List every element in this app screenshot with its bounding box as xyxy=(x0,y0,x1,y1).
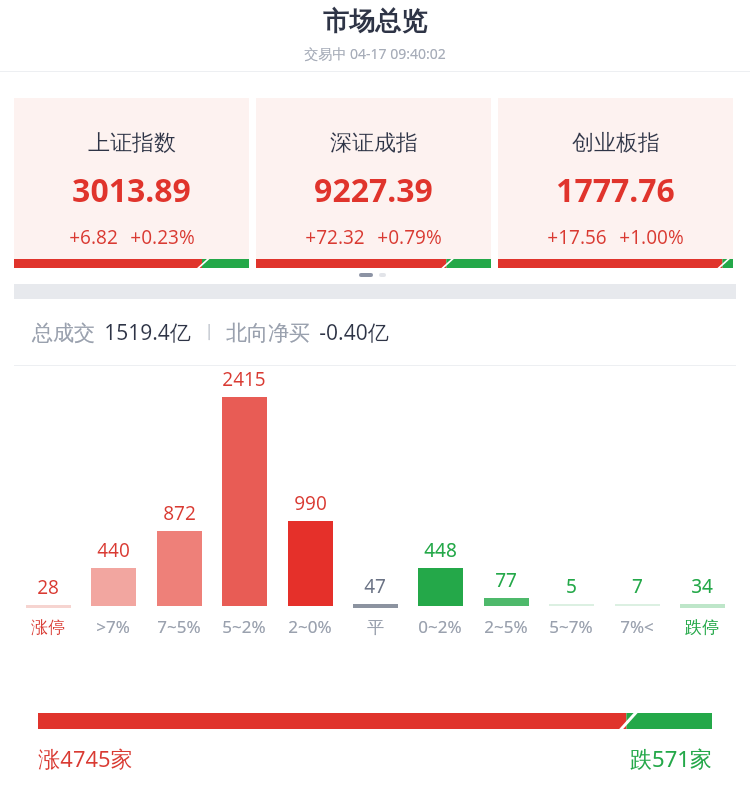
staticText: 平 xyxy=(367,617,384,638)
staticText: 7~5% xyxy=(157,615,201,638)
staticText: 5 xyxy=(566,573,577,599)
staticText: 交易中 04-17 09:40:02 xyxy=(304,44,446,63)
staticText: 1519.4亿 xyxy=(104,318,191,347)
staticText: +0.23% xyxy=(130,224,195,250)
staticText: 448 xyxy=(424,537,457,563)
button[interactable]: 上证指数 xyxy=(14,98,249,268)
staticText: +0.79% xyxy=(377,224,442,250)
staticText: 跌571家 xyxy=(630,743,712,773)
staticText: 34 xyxy=(691,573,713,599)
staticText: 北向净买 xyxy=(226,320,310,346)
button[interactable]: 深证成指 xyxy=(256,98,491,268)
staticText: 2~5% xyxy=(484,615,528,638)
staticText: -0.40亿 xyxy=(319,318,389,347)
staticText: 28 xyxy=(37,574,59,600)
staticText: 5~2% xyxy=(222,615,266,638)
staticText: 77 xyxy=(495,567,517,593)
staticText: 3013.89 xyxy=(72,168,191,212)
button[interactable]: 总成交 xyxy=(0,299,750,365)
staticText: 7 xyxy=(632,573,643,599)
staticText: 440 xyxy=(97,537,130,563)
staticText: 0~2% xyxy=(418,615,462,638)
staticText: 9227.39 xyxy=(314,168,433,212)
staticText: +1.00% xyxy=(619,224,684,250)
staticText: 创业板指 xyxy=(572,129,660,157)
staticText: >7% xyxy=(96,615,130,638)
other: Advance decline ratio xyxy=(38,713,712,729)
staticText: 5~7% xyxy=(549,615,593,638)
staticText: 2415 xyxy=(222,366,266,392)
staticText: 7%< xyxy=(620,615,654,638)
staticText: 总成交 xyxy=(32,320,95,346)
staticText: 涨4745家 xyxy=(38,743,133,773)
staticText: 跌停 xyxy=(685,617,719,638)
staticText: 深证成指 xyxy=(330,129,418,157)
staticText: 872 xyxy=(163,500,196,526)
staticText: 上证指数 xyxy=(88,129,176,157)
staticText: 2~0% xyxy=(288,615,332,638)
staticText: 丨 xyxy=(201,322,218,343)
staticText: 1777.76 xyxy=(556,168,675,212)
button[interactable]: 28 xyxy=(0,366,750,696)
staticText: 市场总览 xyxy=(323,5,427,38)
staticText: +72.32 xyxy=(305,224,365,250)
staticText: 涨停 xyxy=(31,617,65,638)
button[interactable]: 创业板指 xyxy=(498,98,733,268)
staticText: 990 xyxy=(294,490,327,516)
staticText: +17.56 xyxy=(547,224,607,250)
staticText: 47 xyxy=(364,573,386,599)
staticText: +6.82 xyxy=(69,224,118,250)
